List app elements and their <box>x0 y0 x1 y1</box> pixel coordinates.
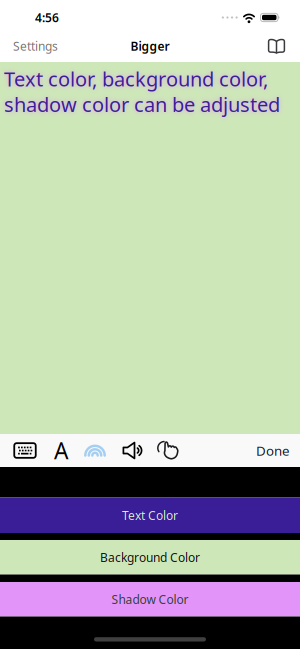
button[interactable]: Background Color <box>0 540 300 574</box>
staticText: Background Color <box>100 549 200 565</box>
button[interactable]: Settings <box>13 38 58 54</box>
button[interactable]: Done <box>256 442 290 459</box>
staticText: Shadow Color <box>111 591 188 607</box>
staticText: Text Color <box>122 507 178 523</box>
button[interactable]: Text size <box>54 435 68 465</box>
button[interactable]: Text Color <box>0 497 300 533</box>
button[interactable]: Colors <box>84 444 106 456</box>
staticText: Done <box>256 442 290 459</box>
button[interactable]: Shadow Color <box>0 582 300 616</box>
staticText: Text color, background color, shadow col… <box>4 65 280 118</box>
staticText: Settings <box>13 38 58 54</box>
button[interactable]: Help Book <box>268 39 285 53</box>
staticText: 4:56 <box>35 9 59 25</box>
button[interactable]: Speak <box>122 442 141 459</box>
staticText: A <box>54 435 68 465</box>
button[interactable]: Keyboard <box>14 443 36 458</box>
staticText: Bigger <box>130 38 169 54</box>
button[interactable]: Gestures <box>158 440 179 460</box>
